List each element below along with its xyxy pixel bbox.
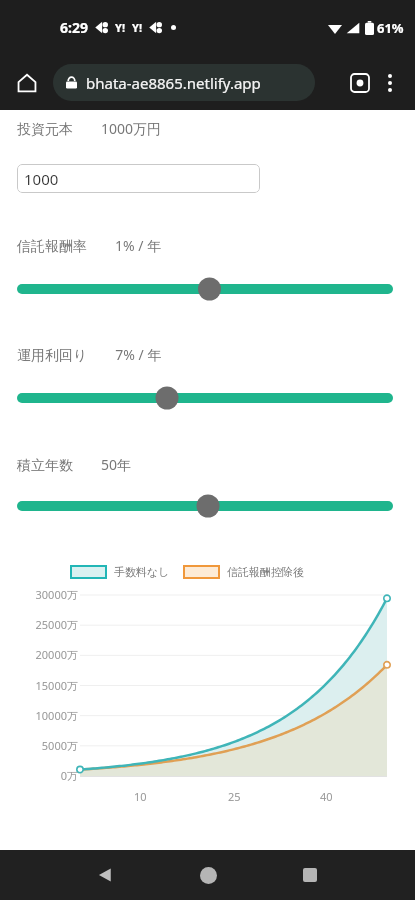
staticText: 20000万 xyxy=(35,647,78,662)
staticText: 信託報酬率 1% / 年 xyxy=(17,236,162,255)
staticText: 30000万 xyxy=(35,587,78,602)
staticText: 投資元本 1000万円 xyxy=(17,119,162,138)
staticText: 10 xyxy=(134,789,147,804)
staticText: 1000 xyxy=(24,169,59,189)
button[interactable]: More options xyxy=(373,66,407,100)
staticText: Y! xyxy=(132,20,142,35)
staticText: 10000万 xyxy=(35,708,78,723)
staticText: 6:29 xyxy=(60,18,88,37)
staticText: 5000万 xyxy=(41,738,78,753)
staticText: Y! xyxy=(115,20,125,35)
staticText: 信託報酬控除後 xyxy=(227,565,304,579)
staticText: 手数料なし xyxy=(114,565,170,579)
staticText: 25000万 xyxy=(35,617,78,632)
staticText: bhata-ae8865.netlify.app xyxy=(86,73,261,93)
button[interactable]: Recent apps xyxy=(287,852,333,898)
button[interactable]: Slider xyxy=(6,493,409,519)
staticText: 0万 xyxy=(60,768,78,783)
staticText: 積立年数 50年 xyxy=(17,455,132,474)
staticText: 運用利回り 7% / 年 xyxy=(17,345,162,364)
button[interactable]: Switch tabs xyxy=(343,66,377,100)
button[interactable]: Slider xyxy=(6,385,409,411)
staticText: 61% xyxy=(377,19,404,37)
button[interactable]: 1000 xyxy=(17,164,260,193)
button[interactable]: Home xyxy=(8,64,46,102)
staticText: 40 xyxy=(320,789,333,804)
button[interactable]: bhata-ae8865.netlify.app xyxy=(53,64,315,101)
button[interactable]: Home xyxy=(185,852,231,898)
button[interactable]: Back xyxy=(82,852,128,898)
button[interactable]: Slider xyxy=(6,276,409,302)
staticText: 25 xyxy=(228,789,241,804)
staticText: 15000万 xyxy=(35,678,78,693)
